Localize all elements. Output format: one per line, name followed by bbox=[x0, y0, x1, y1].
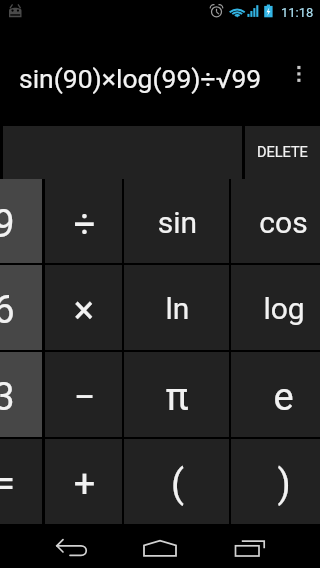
button[interactable]: + bbox=[45, 439, 122, 524]
staticText: π bbox=[165, 374, 188, 419]
staticText: ln bbox=[165, 290, 189, 325]
button[interactable]: 3 bbox=[0, 352, 42, 437]
button[interactable]: 9 bbox=[0, 179, 42, 263]
staticText: 6 bbox=[0, 287, 15, 332]
button[interactable]: log bbox=[231, 265, 320, 350]
button[interactable]: e bbox=[231, 352, 320, 437]
staticText: ( bbox=[170, 461, 184, 506]
button[interactable]: DELETE bbox=[245, 126, 320, 179]
button[interactable]: ÷ bbox=[45, 179, 122, 263]
button[interactable]: − bbox=[45, 352, 122, 437]
staticText: ) bbox=[277, 461, 291, 506]
staticText: − bbox=[73, 374, 95, 419]
button[interactable]: 6 bbox=[0, 265, 42, 350]
button[interactable]: More options bbox=[280, 24, 320, 126]
button[interactable]: = bbox=[0, 439, 42, 524]
staticText: 3 bbox=[0, 374, 15, 419]
staticText: sin(90)×log(99)÷√99 bbox=[19, 63, 262, 94]
button[interactable]: Back bbox=[36, 524, 106, 568]
button[interactable]: ln bbox=[124, 265, 229, 350]
staticText: + bbox=[73, 461, 95, 506]
button[interactable]: Home bbox=[130, 524, 190, 568]
staticText: DELETE bbox=[257, 144, 308, 161]
staticText: log bbox=[263, 290, 305, 325]
staticText: ÷ bbox=[73, 201, 95, 246]
button[interactable]: ( bbox=[124, 439, 229, 524]
button[interactable]: π bbox=[124, 352, 229, 437]
button[interactable]: sin bbox=[124, 179, 229, 263]
button[interactable]: cos bbox=[231, 179, 320, 263]
staticText: e bbox=[273, 374, 294, 419]
staticText: 11:18 bbox=[281, 5, 314, 20]
button[interactable]: × bbox=[45, 265, 122, 350]
button[interactable]: Recent apps bbox=[234, 524, 294, 568]
button[interactable]: ) bbox=[231, 439, 320, 524]
staticText: × bbox=[73, 287, 94, 332]
staticText: 9 bbox=[0, 201, 15, 246]
staticText: sin bbox=[157, 204, 197, 239]
staticText: cos bbox=[259, 204, 308, 239]
staticText: = bbox=[0, 461, 15, 506]
